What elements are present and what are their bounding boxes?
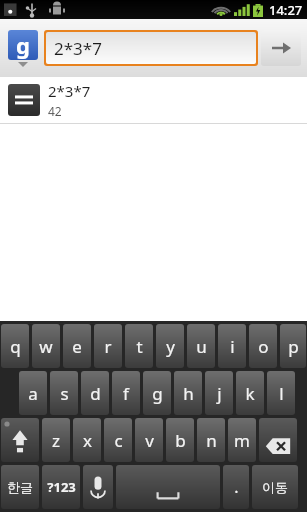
button[interactable]: m — [228, 418, 256, 462]
staticText: b — [175, 429, 186, 452]
button[interactable]: i — [218, 324, 246, 368]
button[interactable]: t — [125, 324, 153, 368]
staticText: z — [52, 429, 60, 452]
staticText: e — [72, 335, 82, 358]
button[interactable]: v — [135, 418, 163, 462]
button[interactable]: 2*3*7 — [46, 32, 256, 64]
button[interactable]: w — [32, 324, 60, 368]
button[interactable]: o — [249, 324, 277, 368]
staticText: m — [234, 429, 250, 452]
button[interactable]: z — [42, 418, 70, 462]
staticText: q — [10, 335, 21, 358]
button[interactable]: n — [197, 418, 225, 462]
staticText: 이동 — [262, 479, 288, 495]
button[interactable]: d — [81, 371, 109, 415]
staticText: 2*3*7 — [48, 81, 91, 101]
staticText: g — [16, 30, 30, 60]
button[interactable] — [116, 465, 220, 509]
button[interactable]: h — [174, 371, 202, 415]
staticText: v — [145, 429, 154, 452]
button[interactable]: y — [156, 324, 184, 368]
button[interactable]: s — [50, 371, 78, 415]
button[interactable]: g — [143, 371, 171, 415]
staticText: 한글 — [7, 479, 33, 495]
button[interactable]: a — [19, 371, 47, 415]
button[interactable]: Search source Google — [6, 28, 40, 69]
staticText: g — [152, 382, 163, 405]
staticText: j — [217, 382, 222, 405]
staticText: l — [279, 382, 284, 405]
button[interactable]: . — [223, 465, 249, 509]
button[interactable]: 한글 — [1, 465, 39, 509]
button[interactable]: j — [205, 371, 233, 415]
button[interactable]: q — [1, 324, 29, 368]
button[interactable]: p — [280, 324, 306, 368]
staticText: y — [166, 335, 175, 358]
button[interactable]: 2*3*7 — [0, 77, 307, 123]
staticText: n — [206, 429, 217, 452]
staticText: w — [39, 335, 53, 358]
staticText: 14:27 — [269, 1, 303, 19]
staticText: h — [183, 382, 194, 405]
staticText: . — [234, 476, 239, 498]
button[interactable]: r — [94, 324, 122, 368]
button[interactable]: ?123 — [42, 465, 80, 509]
button[interactable]: e — [63, 324, 91, 368]
staticText: k — [245, 382, 255, 405]
button[interactable]: 이동 — [252, 465, 298, 509]
button[interactable]: k — [236, 371, 264, 415]
button[interactable]: c — [104, 418, 132, 462]
staticText: o — [258, 335, 269, 358]
staticText: u — [196, 335, 207, 358]
staticText: p — [288, 335, 299, 358]
staticText: a — [28, 382, 38, 405]
button[interactable]: x — [73, 418, 101, 462]
staticText: r — [104, 335, 112, 358]
button[interactable]: Search — [261, 30, 301, 66]
staticText: i — [230, 335, 235, 358]
button[interactable]: l — [267, 371, 295, 415]
button[interactable]: u — [187, 324, 215, 368]
button[interactable]: b — [166, 418, 194, 462]
staticText: 42 — [48, 103, 62, 119]
button[interactable]: f — [112, 371, 140, 415]
staticText: s — [60, 382, 69, 405]
button[interactable] — [259, 418, 297, 462]
staticText: c — [114, 429, 123, 452]
button[interactable] — [83, 465, 113, 509]
staticText: ?123 — [47, 478, 76, 496]
staticText: 2*3*7 — [54, 37, 102, 60]
staticText: t — [136, 335, 143, 358]
button[interactable] — [1, 418, 39, 462]
staticText: f — [123, 382, 129, 405]
staticText: x — [83, 429, 92, 452]
staticText: d — [90, 382, 101, 405]
